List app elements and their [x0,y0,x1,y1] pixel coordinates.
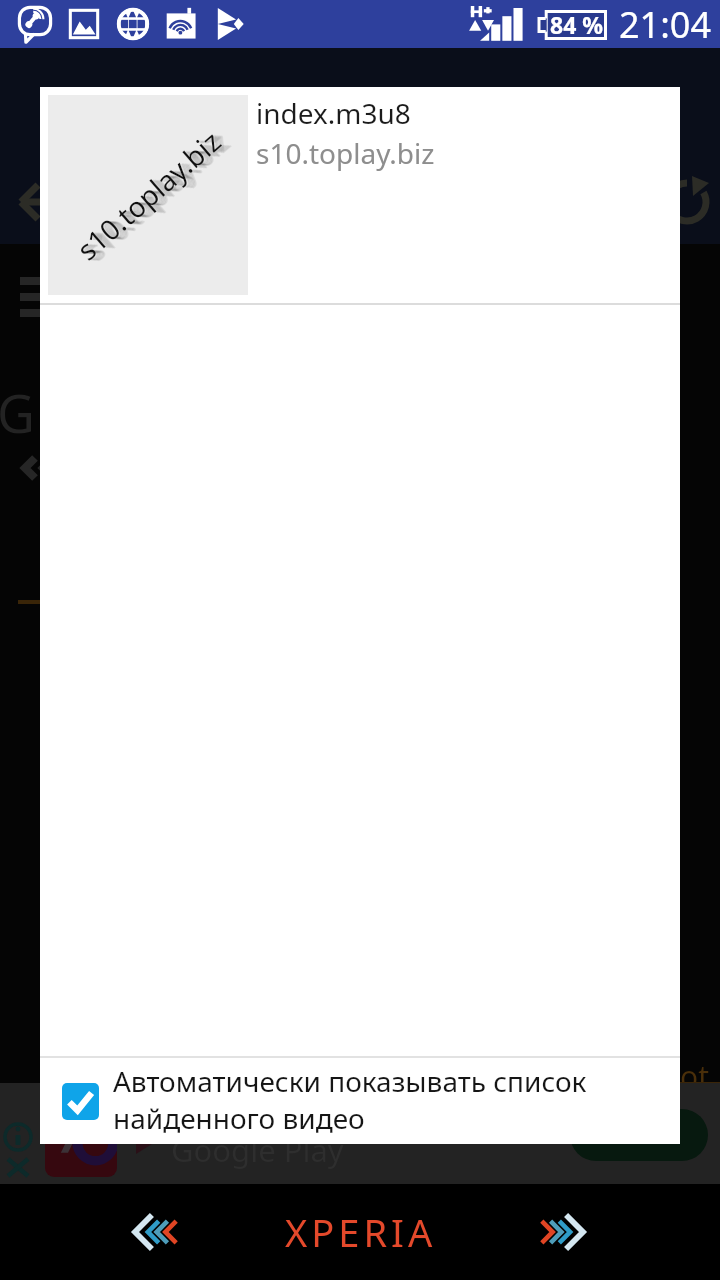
button[interactable] [570,1109,708,1161]
staticText: index.m3u8 [256,94,411,132]
staticText: s10.toplay.biz [68,122,228,268]
staticText: 84 % [550,9,604,40]
staticText: s10.toplay.biz [71,122,231,268]
staticText: ot [680,1056,709,1097]
staticText: Автоматически показывать список найденно… [113,1062,587,1137]
button[interactable]: Ad info [0,1083,40,1184]
staticText: Google Play [171,1129,344,1171]
staticText: s10.toplay.biz [73,122,233,268]
button[interactable]: Recent apps [490,1184,630,1280]
staticText: s10.toplay.biz [74,122,234,268]
staticText: XPERIA [285,1206,437,1258]
button[interactable]: Back [88,1184,228,1280]
staticText: s10.toplay.biz [78,123,238,269]
staticText: 21:04 [619,0,712,48]
staticText: G [0,377,35,448]
staticText: s10.toplay.biz [256,134,435,172]
button[interactable]: XPERIA [256,1184,466,1280]
button[interactable]: s10.toplay.biz [40,87,680,303]
staticText: s10.toplay.biz [75,122,235,268]
staticText: s10.toplay.biz [77,122,237,269]
button[interactable]: Автоматически показывать список найденно… [40,1058,680,1144]
